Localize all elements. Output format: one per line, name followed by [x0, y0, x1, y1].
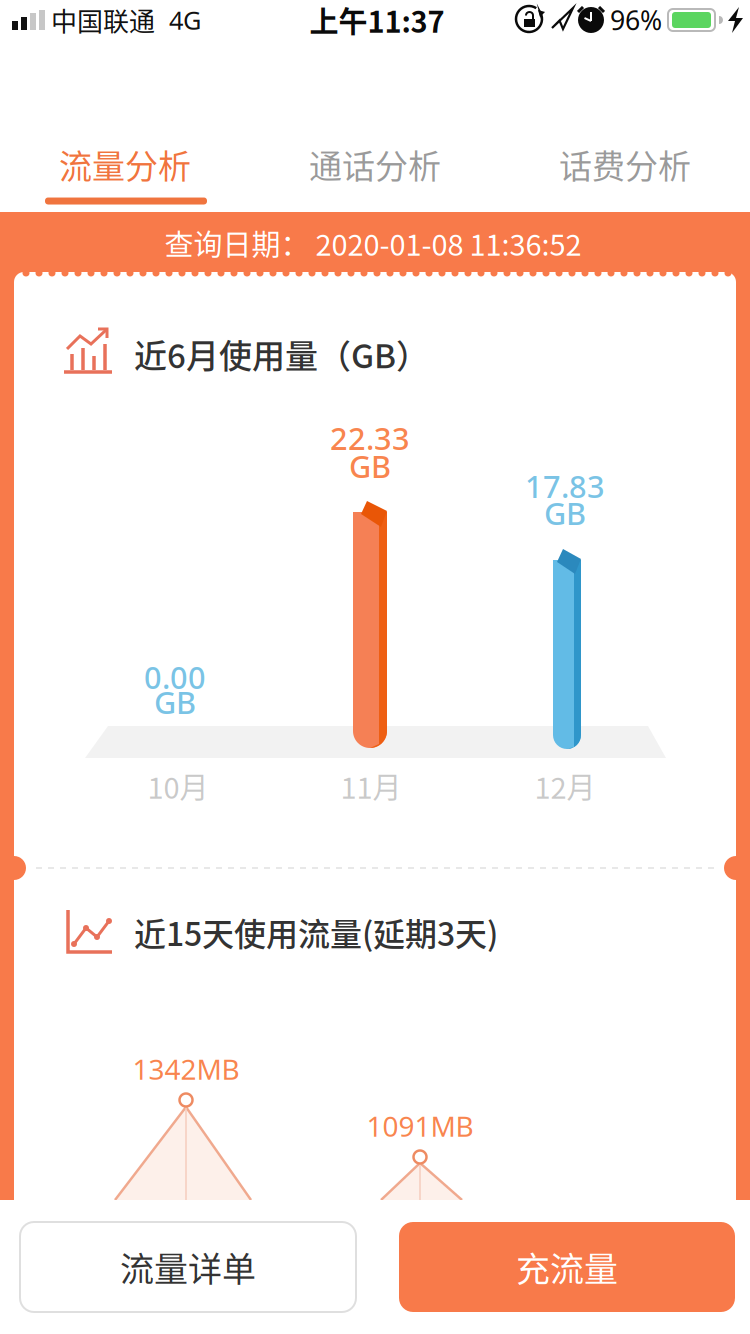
- staticText: 11月: [340, 765, 401, 807]
- staticText: 12月: [534, 765, 595, 807]
- staticText: 近6月使用量（GB）: [134, 330, 429, 378]
- staticText: 近15天使用流量(延期3天): [134, 909, 498, 955]
- staticText: GB: [154, 682, 196, 722]
- staticText: 查询日期： 2020-01-08 11:36:52: [164, 222, 581, 264]
- button[interactable]: 充流量: [399, 1222, 735, 1312]
- staticText: 流量分析: [59, 140, 191, 188]
- staticText: GB: [544, 493, 586, 533]
- staticText: 10月: [147, 765, 208, 807]
- button[interactable]: 流量详单: [20, 1222, 356, 1312]
- staticText: 4G: [169, 3, 201, 37]
- staticText: 22.33: [330, 418, 410, 458]
- staticText: 流量详单: [120, 1242, 256, 1292]
- staticText: 17.83: [525, 466, 605, 506]
- button[interactable]: 话费分析: [559, 140, 691, 188]
- staticText: GB: [349, 446, 391, 486]
- staticText: 1091MB: [366, 1107, 473, 1145]
- staticText: 0.00: [144, 657, 206, 697]
- staticText: 话费分析: [559, 140, 691, 188]
- button[interactable]: 流量分析: [59, 140, 191, 188]
- staticText: 上午11:37: [309, 0, 444, 41]
- staticText: 中国联通: [51, 1, 155, 39]
- staticText: 通话分析: [309, 140, 441, 188]
- button[interactable]: 通话分析: [309, 140, 441, 188]
- staticText: 96%: [610, 2, 662, 38]
- staticText: 充流量: [516, 1242, 618, 1292]
- staticText: 1342MB: [132, 1050, 239, 1088]
